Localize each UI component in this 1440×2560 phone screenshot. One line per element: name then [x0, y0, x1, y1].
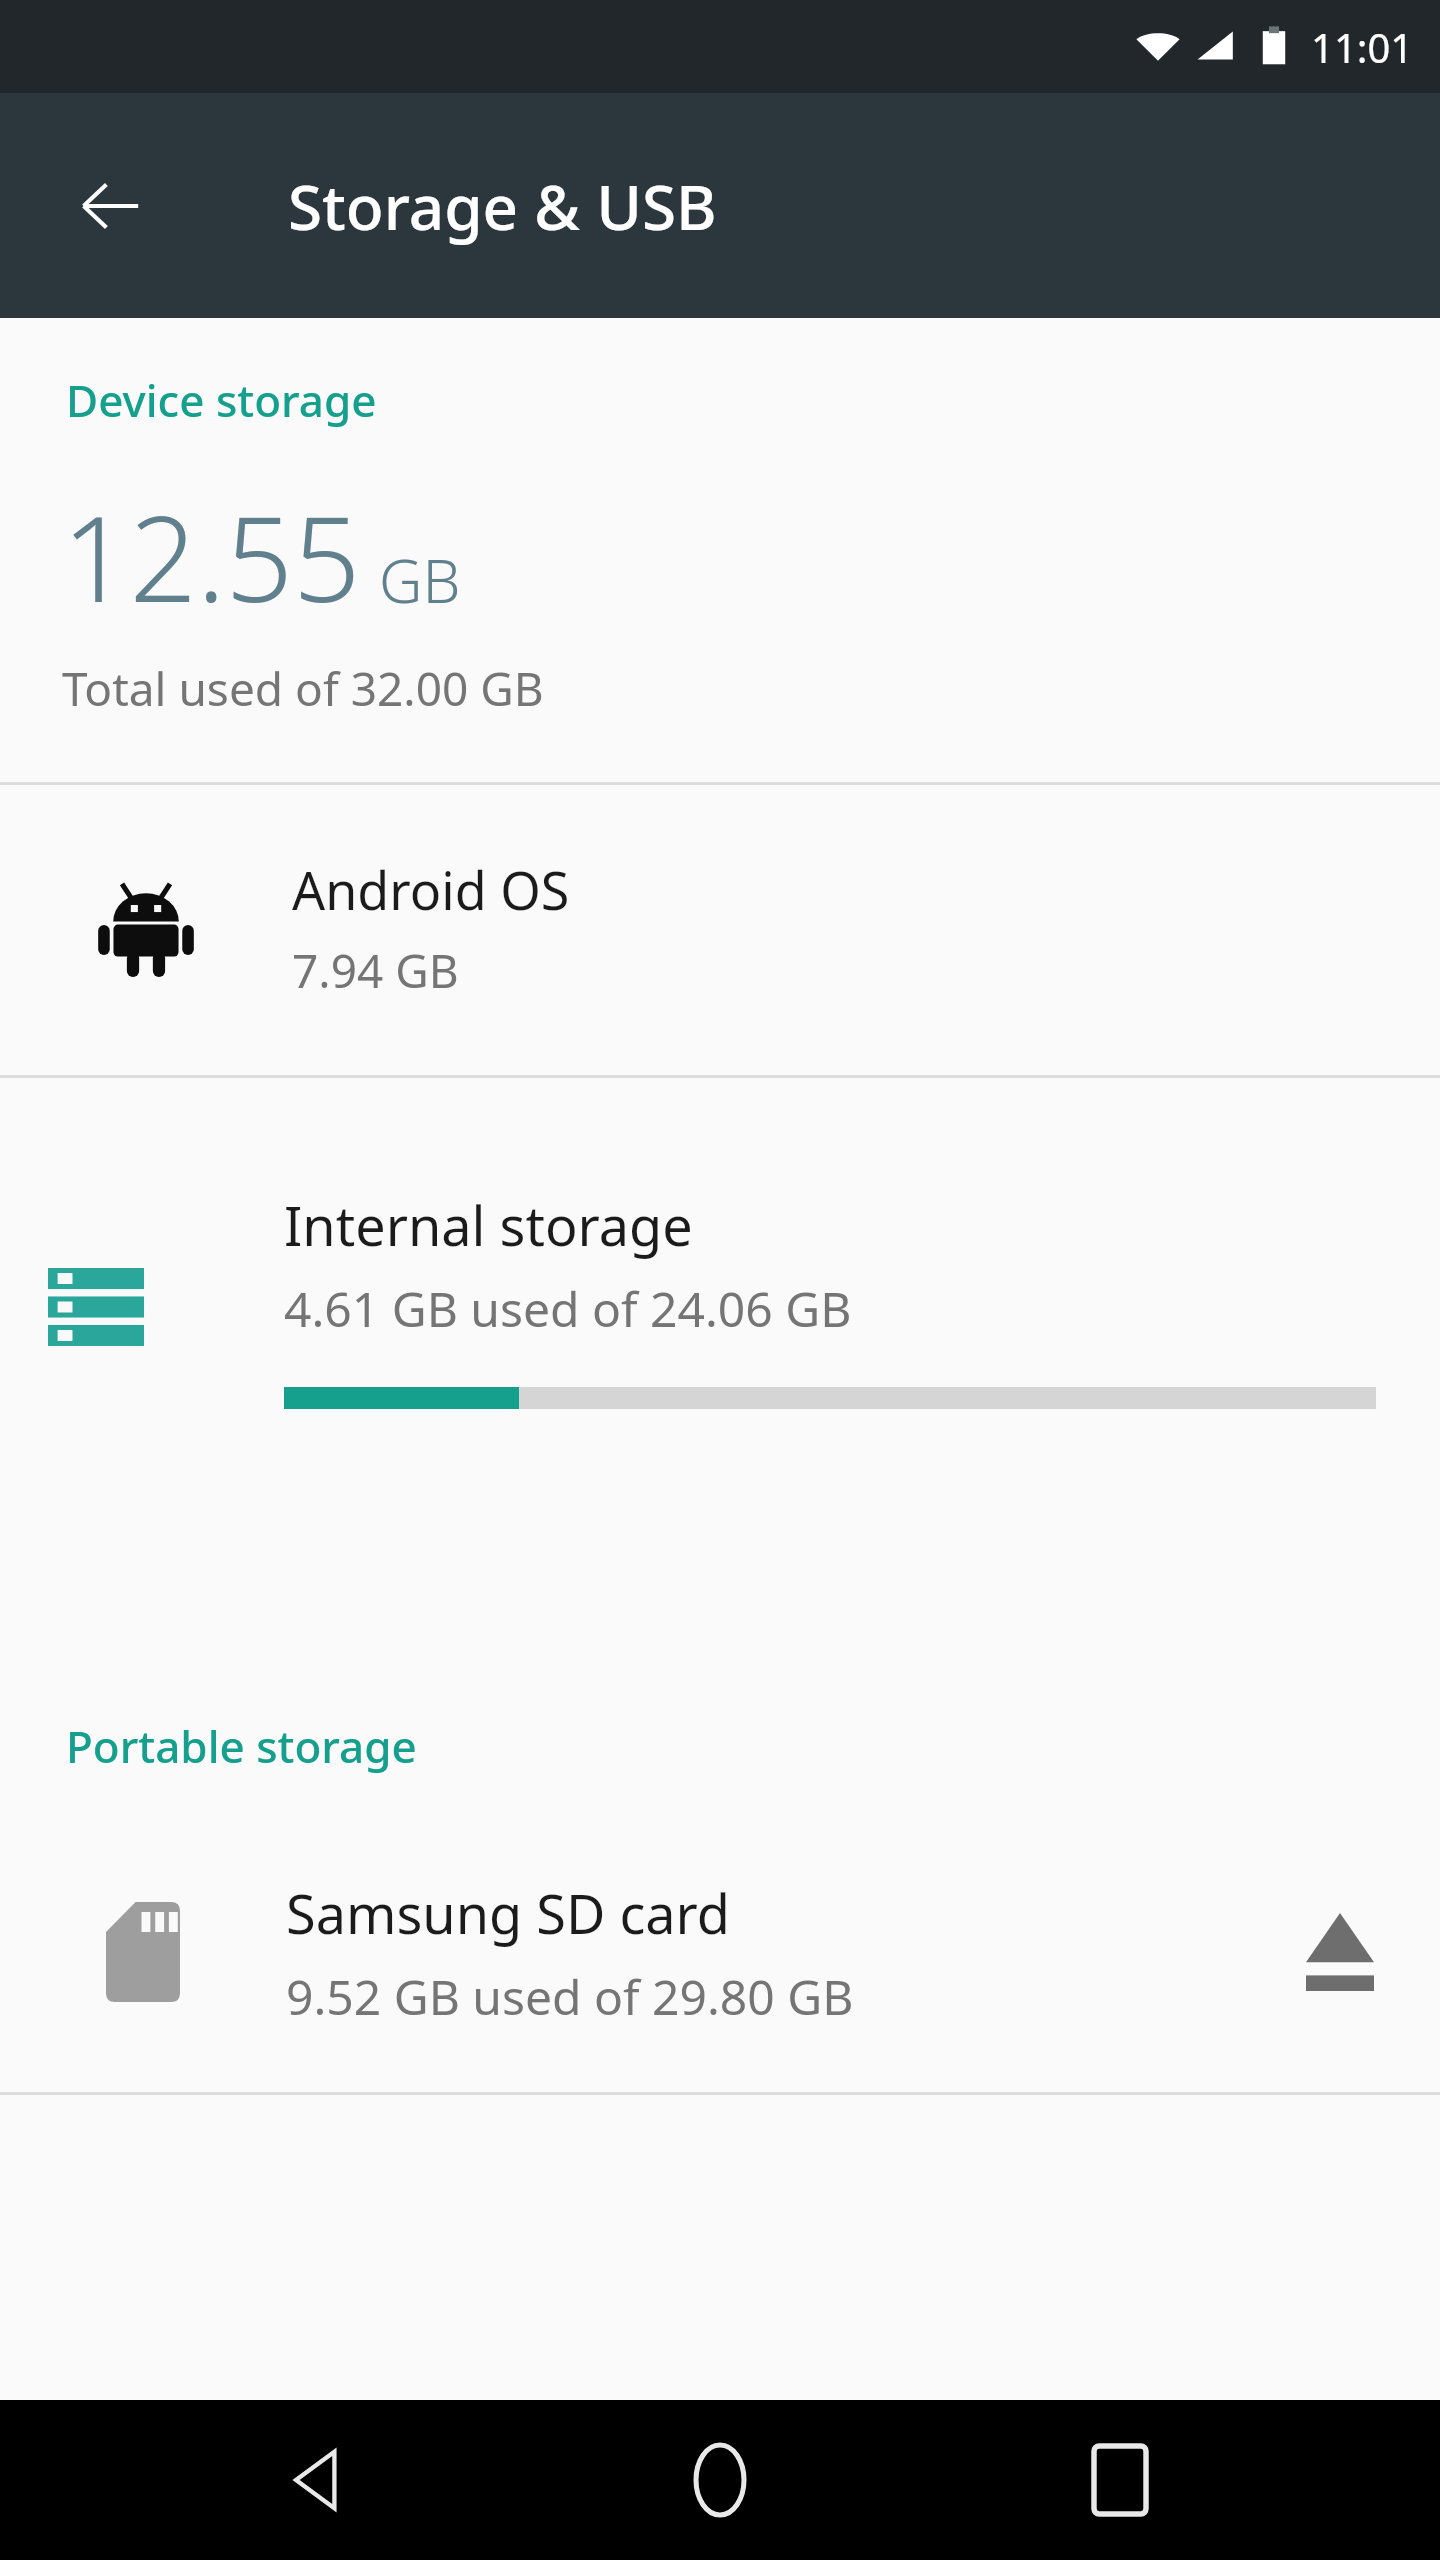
staticText: Android OS	[292, 854, 570, 925]
button[interactable]: Internal storage	[0, 1078, 1440, 1716]
button[interactable]: Back	[240, 2400, 400, 2560]
button[interactable]: Android OS	[0, 785, 1440, 1075]
button[interactable]: Back	[60, 156, 160, 256]
staticText: Samsung SD card	[286, 1876, 731, 1950]
staticText: 12.55	[62, 476, 361, 637]
staticText: Device storage	[66, 370, 377, 430]
staticText: 9.52 GB used of 29.80 GB	[286, 1964, 854, 2029]
button[interactable]: Samsung SD card	[0, 1838, 1440, 2066]
staticText: Total used of 32.00 GB	[62, 657, 544, 720]
staticText: Storage & USB	[288, 164, 717, 248]
button[interactable]: Recents	[1040, 2400, 1200, 2560]
staticText: Internal storage	[284, 1188, 693, 1262]
staticText: Portable storage	[66, 1716, 417, 1776]
staticText: 11:01	[1311, 20, 1414, 74]
button[interactable]: Eject	[1240, 1852, 1440, 2052]
staticText: GB	[379, 539, 461, 621]
staticText: 7.94 GB	[292, 939, 459, 1002]
staticText: 4.61 GB used of 24.06 GB	[284, 1276, 852, 1341]
button[interactable]: Home	[640, 2400, 800, 2560]
